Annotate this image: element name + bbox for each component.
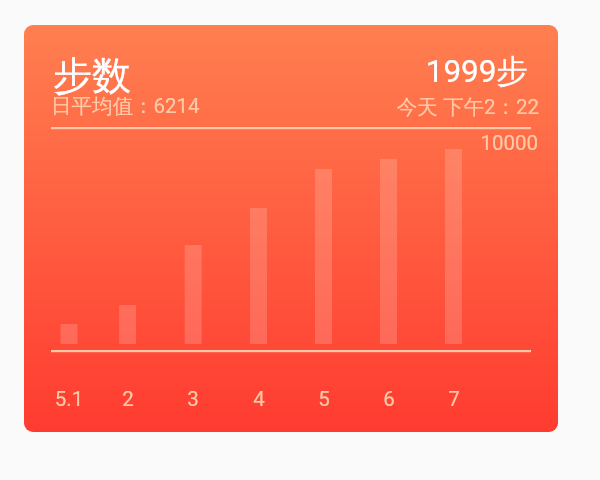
staticText: 5 xyxy=(294,387,354,411)
button[interactable]: 步数 1999步 今天 下午2：22 xyxy=(24,25,558,432)
staticText: 日平均值：6214 xyxy=(51,93,301,119)
staticText: 今天 下午2：22 xyxy=(239,94,539,120)
staticText: 7 xyxy=(424,387,484,411)
staticText: 步数 xyxy=(53,51,253,100)
staticText: 2 xyxy=(98,387,158,411)
staticText: 5.1 xyxy=(39,387,99,411)
staticText: 3 xyxy=(163,387,223,411)
staticText: 4 xyxy=(229,387,289,411)
staticText: 6 xyxy=(359,387,419,411)
staticText: 1999步 xyxy=(228,52,528,92)
staticText: 10000 xyxy=(338,131,538,155)
